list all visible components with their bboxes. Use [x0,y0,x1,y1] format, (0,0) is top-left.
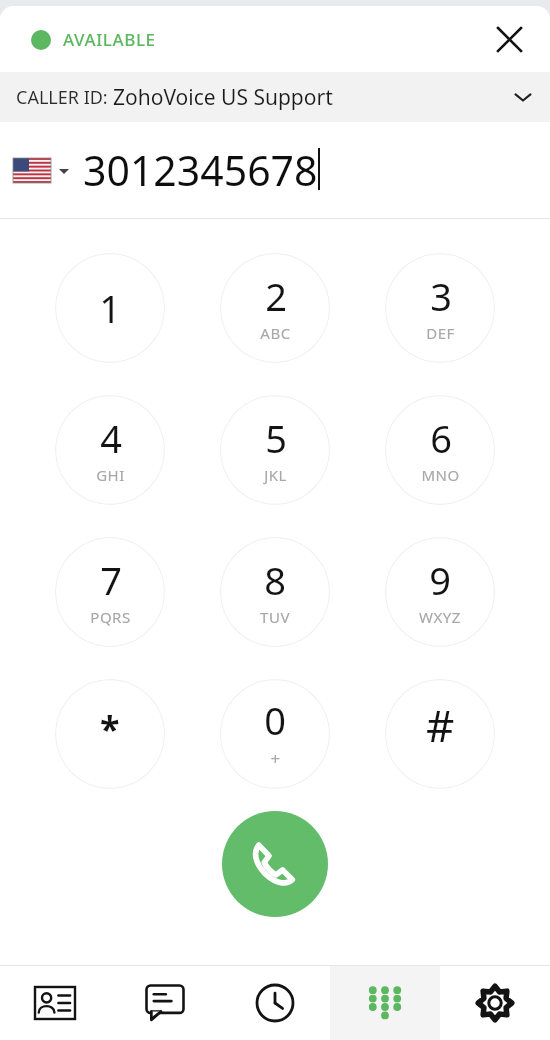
button[interactable]: Close [490,20,528,58]
button[interactable]: Settings [440,966,550,1040]
button[interactable]: 5 [220,395,330,505]
button[interactable]: 6 [385,395,495,505]
button[interactable]: AVAILABLE [31,28,156,51]
button[interactable]: # [385,679,495,789]
button[interactable]: 8 [220,537,330,647]
staticText: JKL [264,465,287,485]
staticText: DEF [426,323,455,343]
staticText: 3 [430,270,452,322]
button[interactable]: CALLER ID: [0,72,550,122]
staticText: WXYZ [419,607,461,627]
button[interactable]: Dialpad [330,966,440,1040]
button[interactable]: 0 [220,679,330,789]
button[interactable]: 7 [55,537,165,647]
staticText: 1 [99,282,121,334]
staticText: CALLER ID: [16,85,113,110]
staticText: 8 [264,554,286,606]
staticText: MNO [421,465,460,485]
button[interactable]: 2 [220,253,330,363]
staticText: 0 [264,694,286,746]
staticText: 9 [429,554,451,606]
button[interactable]: Recents [220,966,330,1040]
staticText: 3012345678 [83,142,318,198]
button[interactable]: Messages [110,966,220,1040]
button[interactable]: 1 [55,253,165,363]
staticText: 7 [100,554,122,606]
staticText: AVAILABLE [63,28,156,51]
staticText: 2 [265,270,287,322]
button[interactable]: Country [13,158,69,183]
button[interactable]: Call [222,811,328,917]
button[interactable]: 4 [55,395,165,505]
button[interactable]: 9 [385,537,495,647]
staticText: * [100,704,120,753]
staticText: 4 [100,412,122,464]
staticText: PQRS [90,607,131,627]
staticText: + [270,747,281,770]
staticText: 5 [265,412,287,464]
staticText: ABC [260,323,291,343]
button[interactable]: 3 [385,253,495,363]
staticText: 6 [430,412,452,464]
staticText: # [426,695,455,755]
staticText: ZohoVoice US Support [113,83,333,112]
button[interactable]: * [55,679,165,789]
staticText: GHI [96,465,125,485]
button[interactable]: Contacts [0,966,110,1040]
staticText: TUV [260,607,290,627]
